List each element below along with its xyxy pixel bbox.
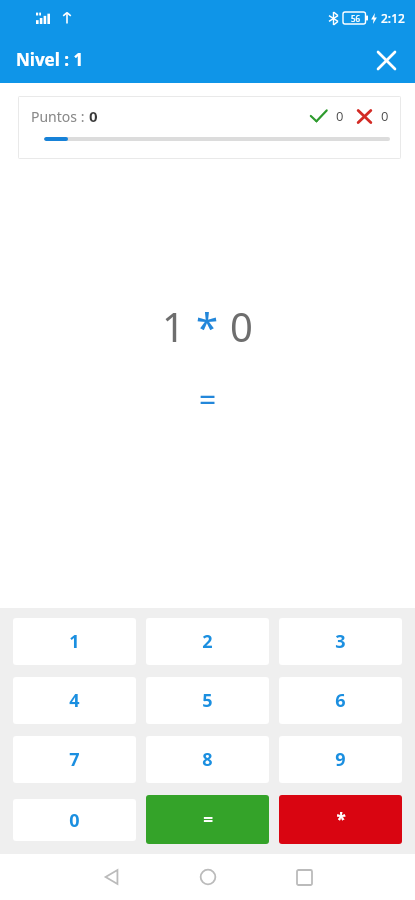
button[interactable]: Recientes: [275, 854, 333, 900]
staticText: 0: [336, 107, 344, 125]
staticText: 5: [202, 688, 213, 713]
staticText: 0: [230, 299, 253, 353]
staticText: 4: [69, 688, 80, 713]
staticText: 0: [89, 106, 98, 126]
button[interactable]: 8: [146, 736, 269, 783]
staticText: *: [196, 299, 219, 353]
staticText: *: [336, 808, 346, 831]
button[interactable]: 0: [13, 799, 136, 841]
button[interactable]: 3: [279, 618, 402, 665]
staticText: 7: [69, 747, 80, 772]
staticText: 1: [162, 299, 185, 353]
button[interactable]: 9: [279, 736, 402, 783]
staticText: =: [199, 379, 217, 420]
button[interactable]: Atrás: [83, 854, 141, 900]
staticText: 6: [335, 688, 346, 713]
staticText: 56: [351, 13, 361, 24]
button[interactable]: Cerrar: [368, 42, 404, 78]
staticText: 2:12: [381, 10, 405, 26]
button[interactable]: 5: [146, 677, 269, 724]
staticText: 1: [69, 629, 80, 654]
staticText: Nivel : 1: [16, 48, 84, 71]
button[interactable]: 7: [13, 736, 136, 783]
button[interactable]: 2: [146, 618, 269, 665]
button[interactable]: 1: [13, 618, 136, 665]
staticText: 2: [202, 629, 213, 654]
staticText: 0: [381, 107, 389, 125]
button[interactable]: Inicio: [179, 854, 237, 900]
staticText: 8: [202, 747, 213, 772]
button[interactable]: *: [279, 795, 402, 844]
staticText: =: [203, 808, 213, 831]
staticText: 0: [69, 808, 80, 833]
button[interactable]: 6: [279, 677, 402, 724]
button[interactable]: 4: [13, 677, 136, 724]
button[interactable]: Puntos :: [18, 96, 401, 159]
staticText: 9: [335, 747, 346, 772]
staticText: 3: [335, 629, 346, 654]
button[interactable]: =: [146, 795, 269, 844]
staticText: Puntos :: [31, 107, 89, 126]
